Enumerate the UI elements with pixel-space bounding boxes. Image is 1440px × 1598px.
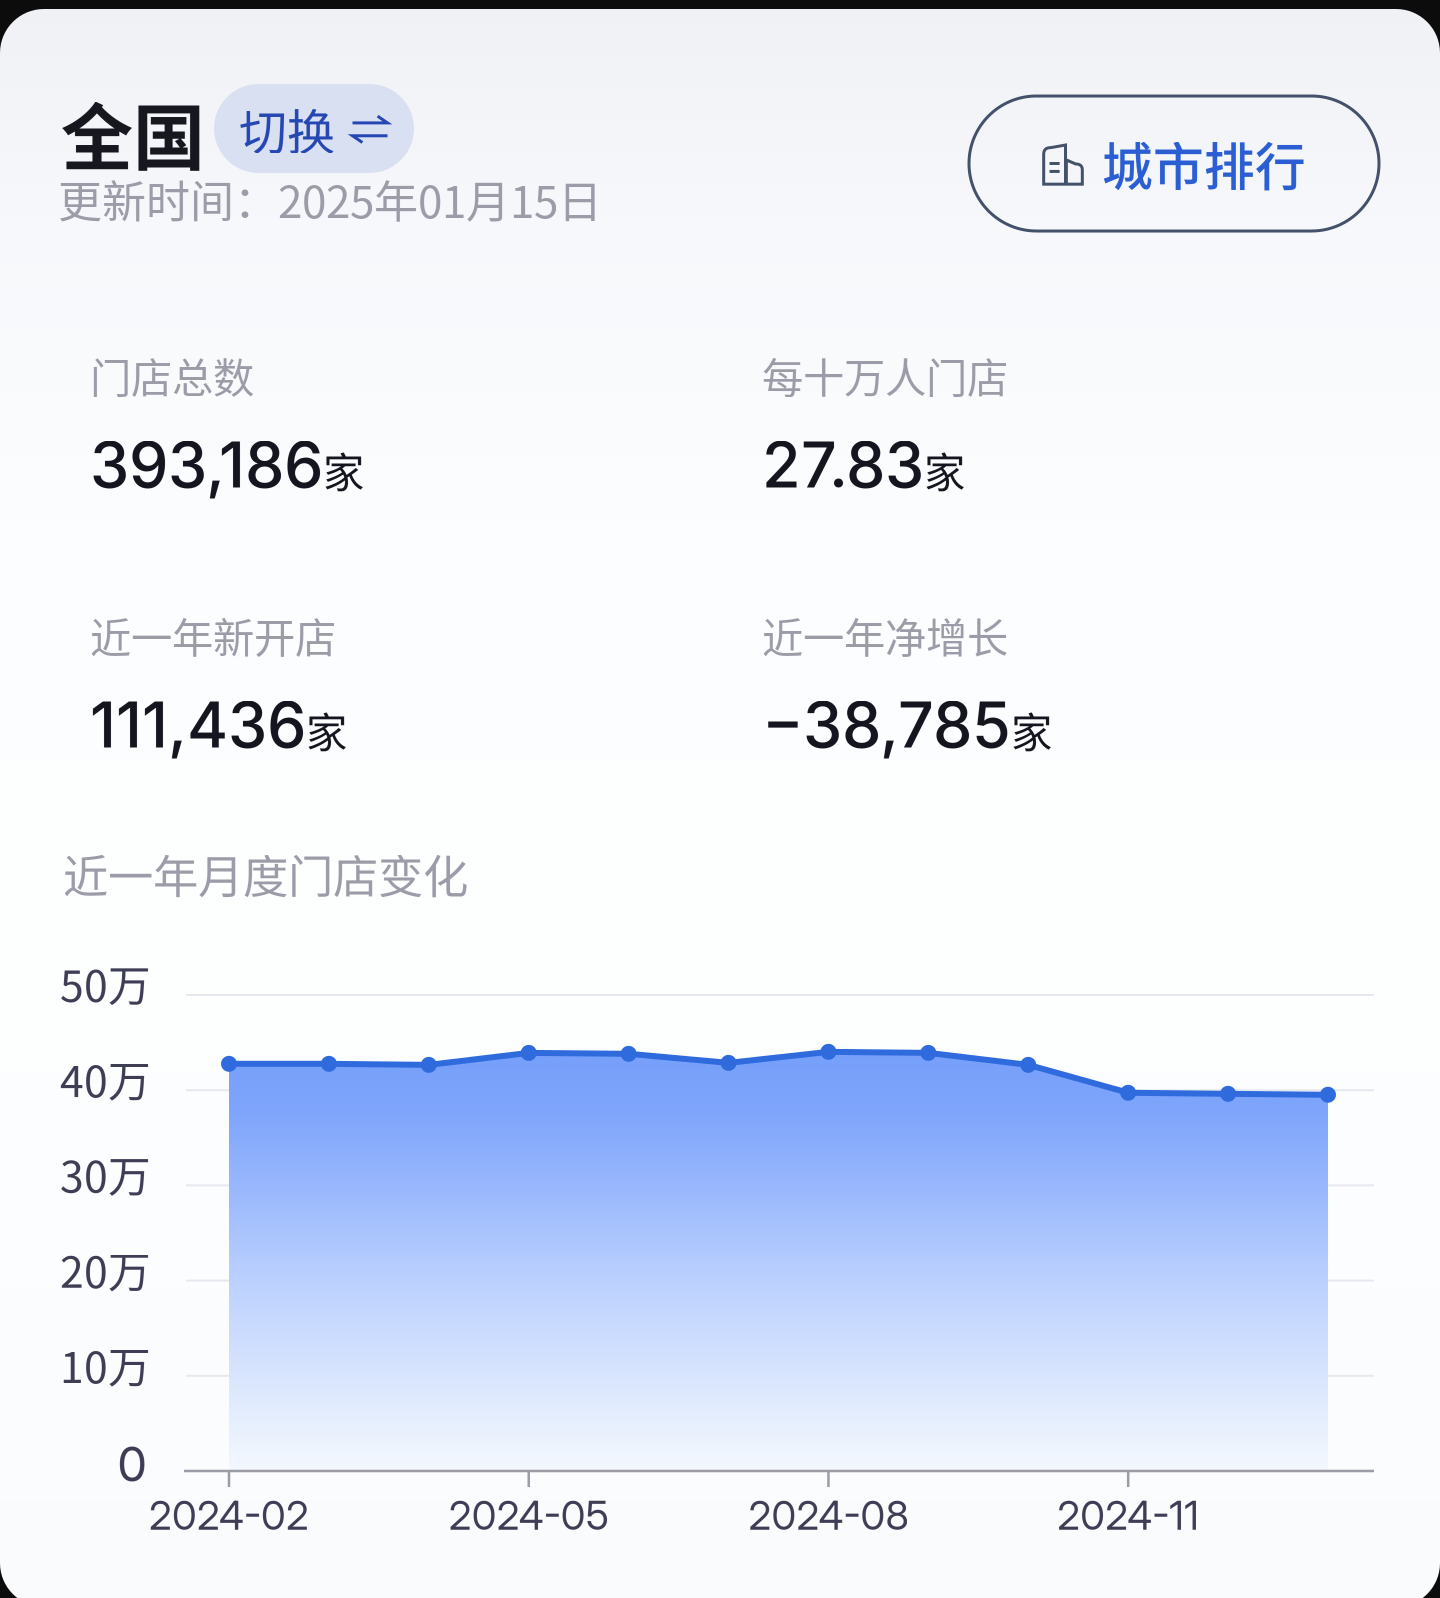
staticText: 2024-05: [449, 1491, 609, 1539]
staticText: 城市排行: [1102, 127, 1306, 200]
staticText: 2024-11: [1057, 1491, 1199, 1539]
staticText: 每十万人门店: [762, 345, 1008, 405]
staticText: 更新时间：2025年01月15日: [58, 167, 602, 231]
staticText: 20万: [60, 1238, 151, 1300]
staticText: 111,436: [90, 687, 306, 763]
staticText: 门店总数: [90, 345, 254, 405]
staticText: 家: [323, 440, 364, 499]
staticText: 30万: [60, 1143, 151, 1205]
staticText: 40万: [60, 1047, 151, 1109]
staticText: −38,785: [762, 687, 1011, 763]
staticText: 近一年净增长: [762, 605, 1008, 665]
staticText: 2024-02: [149, 1491, 309, 1539]
staticText: 家: [1011, 700, 1052, 759]
button[interactable]: 城市排行: [969, 96, 1379, 231]
staticText: 27.83: [762, 427, 924, 503]
button[interactable]: 切换区域: [214, 84, 414, 173]
staticText: 2024-08: [748, 1491, 908, 1539]
staticText: 0: [117, 1435, 147, 1493]
staticText: 10万: [60, 1334, 151, 1395]
staticText: 50万: [60, 952, 151, 1014]
staticText: 近一年新开店: [90, 605, 336, 665]
staticText: 全国: [61, 80, 205, 184]
staticText: 393,186: [90, 427, 323, 503]
staticText: 家: [924, 440, 965, 499]
staticText: 近一年月度门店变化: [63, 841, 468, 907]
staticText: 切换: [239, 94, 335, 163]
staticText: 家: [306, 700, 347, 759]
